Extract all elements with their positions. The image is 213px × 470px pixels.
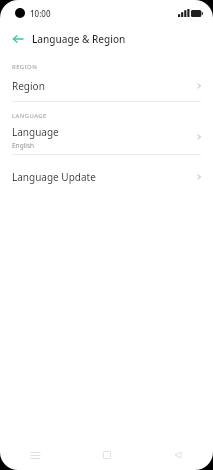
button[interactable]: Back — [8, 29, 28, 49]
button[interactable]: Language — [0, 120, 213, 154]
button[interactable]: Language Update — [0, 155, 213, 193]
button[interactable]: Back — [142, 440, 213, 470]
staticText: Language Update — [12, 170, 96, 184]
staticText: LANGUAGE — [12, 112, 47, 120]
button[interactable]: Region — [0, 71, 213, 101]
staticText: 10:00 — [30, 8, 51, 19]
staticText: Language — [12, 125, 59, 139]
staticText: English — [12, 141, 35, 150]
staticText: Language & Region — [32, 32, 126, 46]
button[interactable]: Recent apps — [0, 440, 71, 470]
staticText: REGION — [12, 63, 38, 71]
staticText: Region — [12, 79, 45, 93]
